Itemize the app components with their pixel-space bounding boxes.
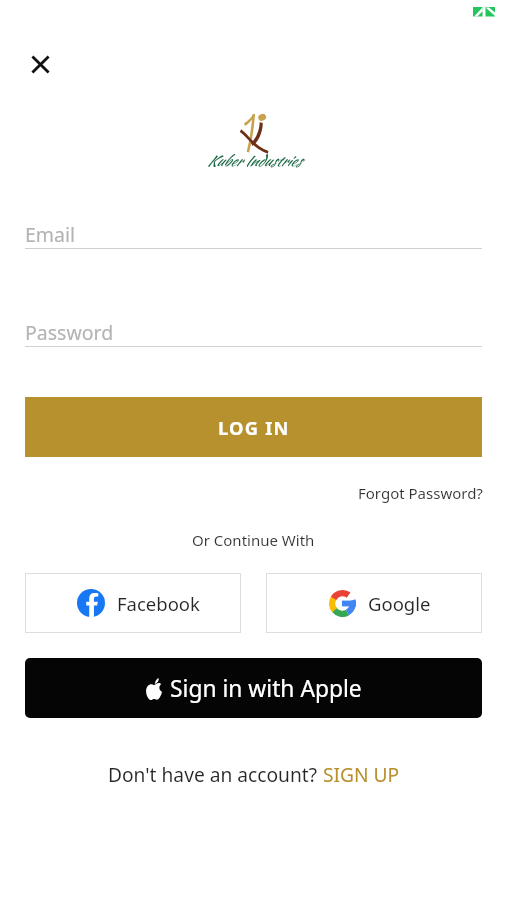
staticText: Kuber Industries	[207, 150, 301, 171]
button[interactable]: Forgot Password?	[358, 483, 483, 503]
staticText: Email	[25, 221, 76, 248]
button[interactable]: Close	[22, 47, 58, 82]
button[interactable]: LOG IN	[25, 397, 482, 457]
staticText: Or Continue With	[192, 530, 315, 550]
button[interactable]: Email	[25, 221, 482, 249]
staticText: Forgot Password?	[358, 483, 483, 503]
staticText: SIGN UP	[323, 761, 400, 787]
staticText: Google	[368, 591, 431, 616]
button[interactable]: Password	[25, 319, 482, 347]
button[interactable]: Sign in with Apple	[25, 658, 482, 718]
staticText: Password	[25, 319, 114, 346]
staticText: LOG IN	[218, 415, 290, 440]
button[interactable]: SIGN UP	[323, 761, 400, 787]
staticText: Facebook	[117, 591, 200, 616]
button[interactable]: Facebook	[25, 573, 241, 633]
staticText: Sign in with Apple	[170, 673, 362, 704]
staticText: Don't have an account?	[108, 761, 323, 787]
button[interactable]: Google	[266, 573, 482, 633]
